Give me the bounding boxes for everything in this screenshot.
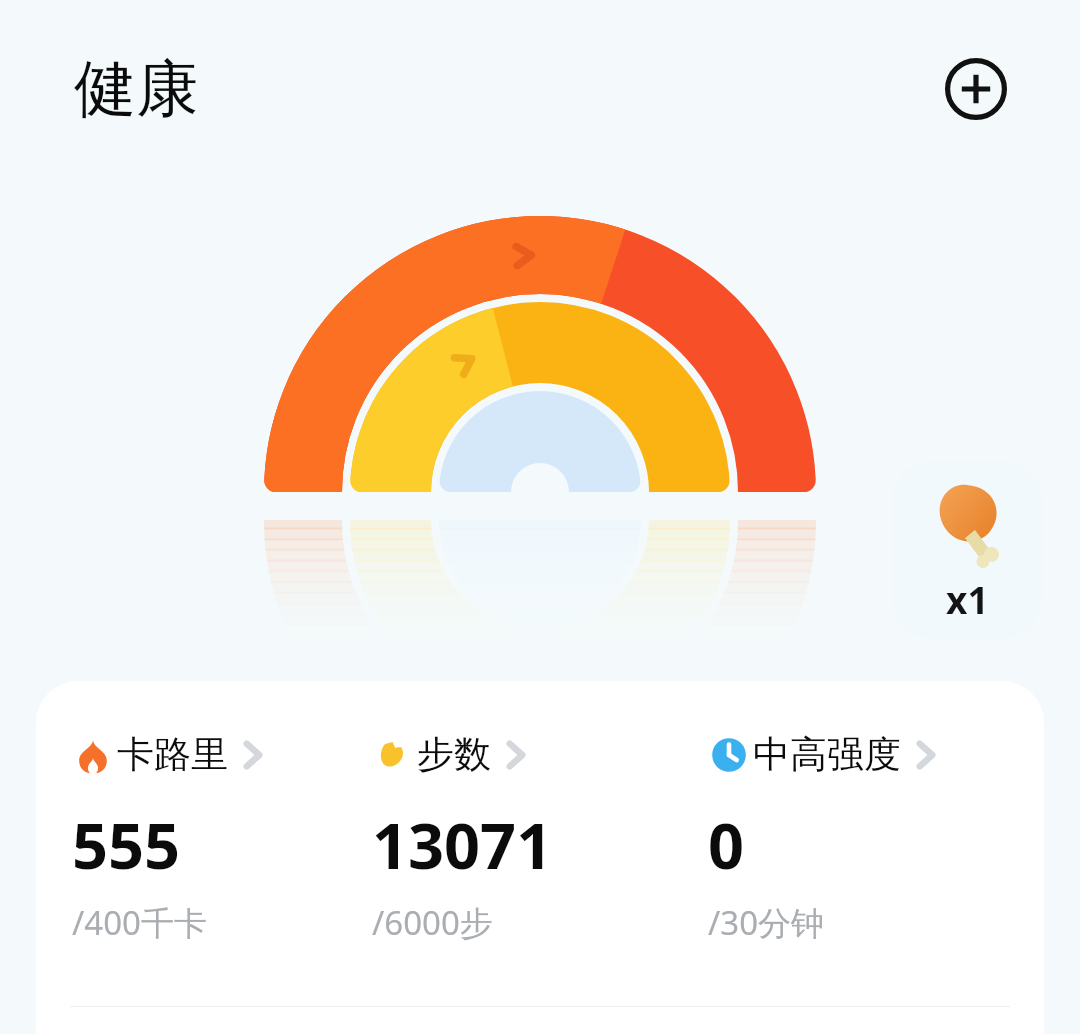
button[interactable]: x1	[892, 461, 1042, 638]
staticText: x1	[946, 574, 989, 624]
button[interactable]: Add	[943, 56, 1009, 122]
button[interactable]: 步数	[372, 731, 708, 945]
staticText: 卡路里	[117, 731, 228, 778]
button[interactable]: 中高强度	[708, 731, 1044, 945]
staticText: /6000步	[372, 900, 493, 945]
staticText: 555	[72, 802, 181, 888]
staticText: 中高强度	[753, 731, 901, 778]
staticText: 步数	[417, 731, 491, 778]
button[interactable]: 卡路里	[72, 731, 372, 945]
staticText: /30分钟	[708, 900, 825, 945]
staticText: 13071	[372, 802, 553, 888]
staticText: /400千卡	[72, 900, 207, 945]
staticText: 0	[708, 802, 745, 888]
staticText: 健康	[74, 50, 198, 128]
